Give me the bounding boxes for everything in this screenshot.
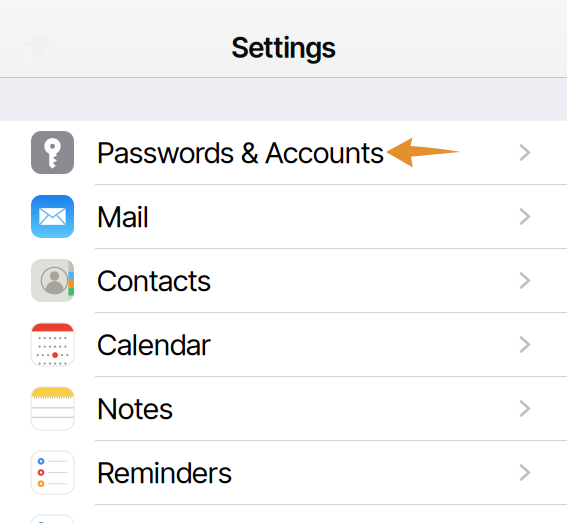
staticText: Mail: [97, 199, 149, 234]
button[interactable]: Phone: [0, 505, 567, 523]
button[interactable]: Reminders: [0, 441, 567, 505]
staticText: Notes: [97, 391, 173, 426]
staticText: Reminders: [97, 455, 232, 490]
button[interactable]: Calendar: [0, 313, 567, 377]
staticText: Calendar: [97, 327, 211, 362]
staticText: Passwords & Accounts: [97, 135, 384, 170]
staticText: Contacts: [97, 263, 211, 298]
button[interactable]: Mail: [0, 185, 567, 249]
staticText: Settings: [231, 31, 335, 64]
button[interactable]: Contacts: [0, 249, 567, 313]
button[interactable]: Passwords & Accounts: [0, 121, 567, 185]
button[interactable]: Notes: [0, 377, 567, 441]
